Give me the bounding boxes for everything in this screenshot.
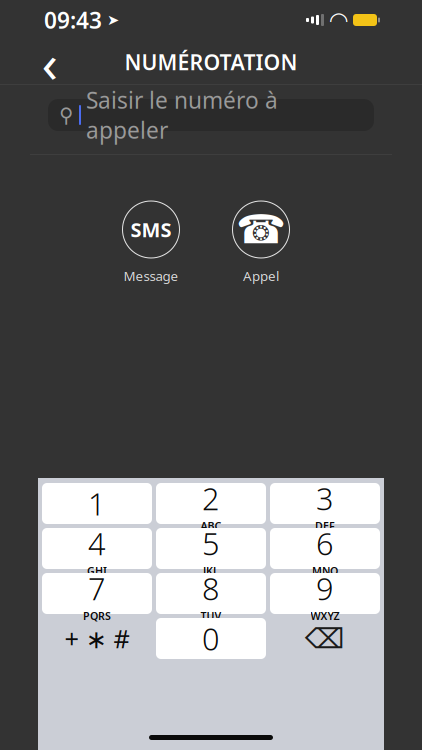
staticText: SMS [130,216,171,243]
staticText: Appel [243,267,279,285]
button[interactable]: 0 [156,618,266,659]
staticText: ◠ [330,7,347,33]
button[interactable]: 8 [156,573,266,614]
staticText: ⌫ [305,623,345,654]
staticText: 2 [202,478,220,519]
staticText: 3 [316,478,334,519]
staticText: 6 [316,523,334,564]
button[interactable]: 9 [270,573,380,614]
staticText: 09:43 [44,5,102,35]
button[interactable]: 2 [156,483,266,524]
button[interactable]: Supprimer [270,618,380,659]
button[interactable]: ⚲ [48,99,374,131]
button[interactable]: Appel [221,201,301,285]
staticText: DEF [315,519,335,533]
staticText: TUV [200,609,221,623]
staticText: GHI [87,564,107,578]
staticText: ⚲ [59,104,74,126]
staticText: 9 [316,568,334,609]
staticText: MNO [312,564,338,578]
staticText: 7 [88,568,106,609]
staticText: WXYZ [310,609,339,623]
staticText: 0 [202,618,220,659]
staticText: Saisir le numéro à appeler [86,85,278,145]
staticText: + ∗ # [64,622,129,655]
button[interactable]: 7 [42,573,152,614]
staticText: NUMÉROTATION [124,48,297,76]
staticText: 1 [88,483,106,524]
staticText: ☎ [236,207,286,252]
button[interactable]: 4 [42,528,152,569]
staticText: 8 [202,568,220,609]
staticText: PQRS [83,609,111,623]
button[interactable]: 3 [270,483,380,524]
staticText: JKL [203,564,219,578]
staticText: ➤ [107,12,119,28]
staticText: 5 [202,523,220,564]
button[interactable]: Retour [28,40,72,84]
button[interactable]: Symboles plus étoile dièse [42,618,152,659]
staticText: ABC [200,519,221,533]
button[interactable]: 1 [42,483,152,524]
button[interactable]: 5 [156,528,266,569]
button[interactable]: 6 [270,528,380,569]
button[interactable]: Message [111,201,191,285]
staticText: Message [123,267,178,285]
staticText: 4 [88,523,106,564]
staticText: ‹ [41,27,58,97]
